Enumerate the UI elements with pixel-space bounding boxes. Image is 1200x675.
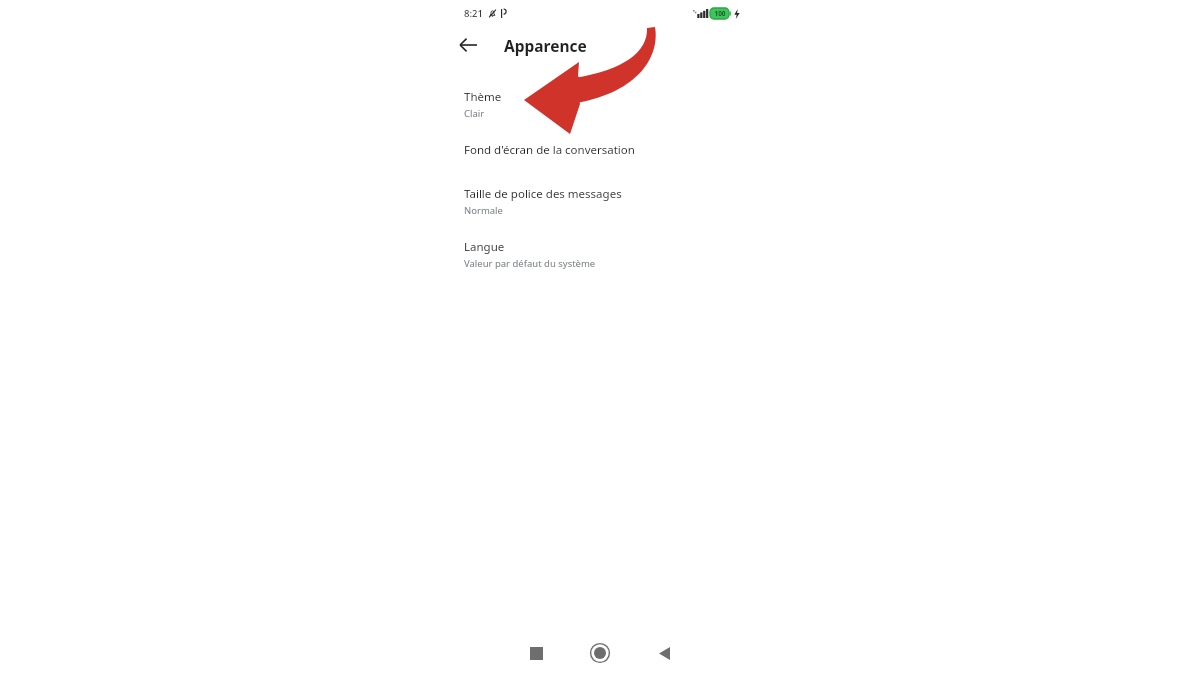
staticText: Fond d'écran de la conversation	[464, 142, 635, 158]
staticText: Normale	[464, 204, 503, 217]
button[interactable]: Accueil	[583, 636, 617, 670]
button[interactable]: Thème	[0, 82, 1200, 135]
staticText: Langue	[464, 239, 505, 255]
button[interactable]: Applications récentes	[519, 636, 553, 670]
button[interactable]: Retour	[647, 636, 681, 670]
button[interactable]: Fond d'écran de la conversation	[0, 135, 1200, 179]
staticText: Thème	[464, 89, 502, 105]
staticText: 100	[714, 9, 726, 18]
staticText: 8:21	[464, 7, 483, 20]
button[interactable]: Langue	[0, 232, 1200, 285]
staticText: Valeur par défaut du système	[464, 257, 596, 270]
staticText: Clair	[464, 107, 485, 120]
staticText: Taille de police des messages	[464, 186, 622, 202]
button[interactable]: Retour	[452, 29, 484, 61]
staticText: Apparence	[504, 35, 587, 56]
button[interactable]: Taille de police des messages	[0, 179, 1200, 232]
